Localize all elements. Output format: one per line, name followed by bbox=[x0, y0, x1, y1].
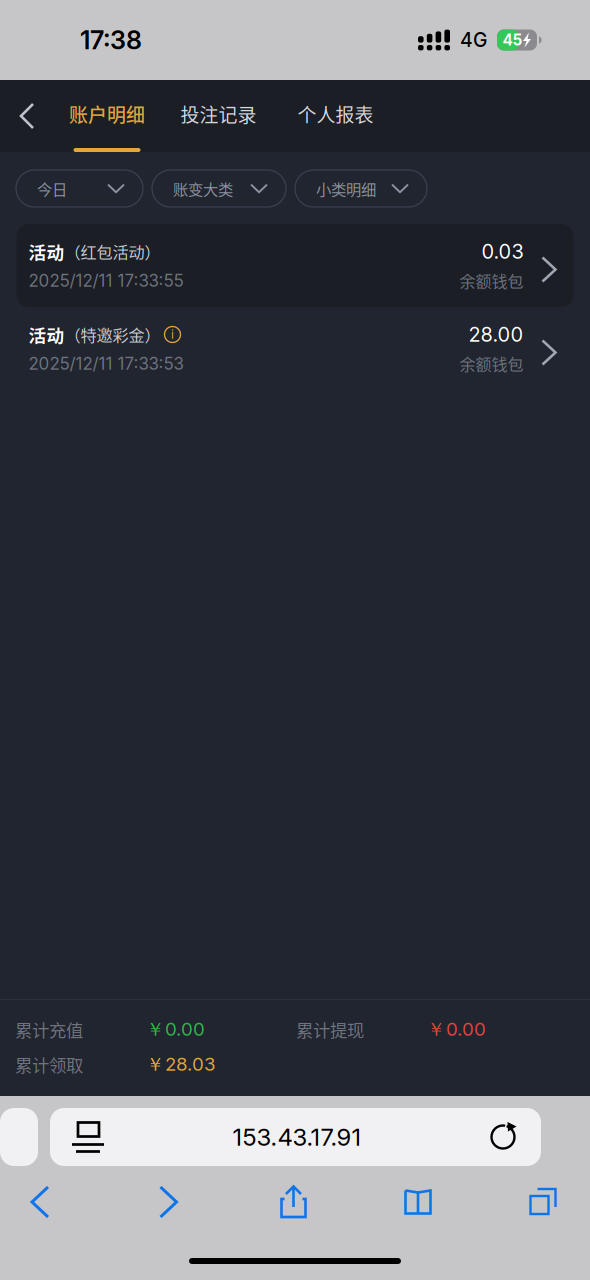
staticText: 余额钱包 bbox=[459, 269, 523, 292]
staticText: ￥0.00 bbox=[427, 1018, 486, 1041]
button[interactable]: 活动 bbox=[16, 307, 573, 390]
button[interactable]: 活动 bbox=[16, 224, 573, 307]
staticText: 今日 bbox=[37, 177, 67, 200]
staticText: 45 bbox=[502, 31, 522, 49]
staticText: 累计提现 bbox=[296, 1017, 364, 1042]
staticText: 2025/12/11 17:33:53 bbox=[28, 353, 183, 374]
staticText: 活动 bbox=[28, 322, 64, 347]
staticText: 活动 bbox=[28, 239, 64, 264]
staticText: 累计充值 bbox=[15, 1017, 83, 1042]
staticText: 4G bbox=[460, 28, 487, 52]
staticText: 累计领取 bbox=[15, 1052, 83, 1077]
staticText: ￥0.00 bbox=[146, 1018, 205, 1041]
staticText: （红包活动） bbox=[64, 240, 160, 263]
button[interactable]: 153.43.17.91 bbox=[50, 1108, 541, 1166]
staticText: 小类明细 bbox=[316, 177, 376, 200]
staticText: 账户明细 bbox=[69, 100, 145, 128]
staticText: 余额钱包 bbox=[459, 352, 523, 375]
button[interactable]: Share bbox=[257, 1175, 330, 1229]
button[interactable]: 账变大类 bbox=[152, 170, 286, 207]
staticText: 2025/12/11 17:33:55 bbox=[28, 270, 183, 291]
button[interactable]: 个人报表 bbox=[277, 80, 394, 152]
button[interactable]: Bookmarks bbox=[330, 1175, 506, 1229]
staticText: 账变大类 bbox=[173, 177, 233, 200]
button[interactable]: Back bbox=[0, 1175, 80, 1229]
button[interactable]: 小类明细 bbox=[295, 170, 427, 207]
staticText: 153.43.17.91 bbox=[232, 1122, 361, 1151]
staticText: i bbox=[171, 327, 174, 342]
button[interactable]: 账户明细 bbox=[54, 80, 160, 152]
button[interactable]: Back bbox=[0, 80, 54, 152]
staticText: （特邀彩金） bbox=[64, 323, 160, 346]
button[interactable]: Forward bbox=[80, 1175, 257, 1229]
staticText: 17:38 bbox=[80, 25, 142, 55]
button[interactable]: 投注记录 bbox=[160, 80, 277, 152]
staticText: 28.00 bbox=[468, 322, 523, 347]
staticText: ￥28.03 bbox=[146, 1053, 216, 1076]
staticText: 个人报表 bbox=[297, 100, 373, 128]
button[interactable]: 今日 bbox=[16, 170, 143, 207]
staticText: 0.03 bbox=[481, 239, 523, 264]
staticText: 投注记录 bbox=[180, 100, 256, 128]
button[interactable]: Tabs bbox=[506, 1175, 581, 1229]
